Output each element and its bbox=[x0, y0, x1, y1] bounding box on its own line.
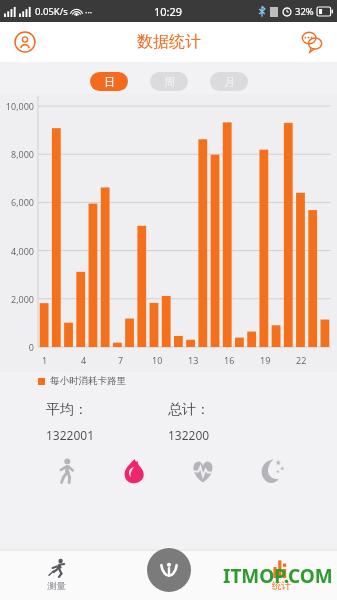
staticText: 统计 bbox=[272, 580, 291, 592]
staticText: 10,000 bbox=[5, 100, 34, 112]
staticText: 平均： bbox=[46, 401, 88, 419]
staticText: 7 bbox=[118, 354, 124, 366]
staticText: 1 bbox=[42, 354, 48, 366]
staticText: 10 bbox=[152, 354, 163, 366]
staticText: 测量 bbox=[47, 580, 66, 592]
button[interactable]: Calories bbox=[114, 451, 154, 491]
staticText: 日 bbox=[104, 75, 115, 89]
button[interactable]: 周 bbox=[150, 72, 188, 91]
staticText: 0.05K/s bbox=[35, 5, 68, 18]
staticText: 22 bbox=[296, 354, 307, 366]
staticText: 每小时消耗卡路里 bbox=[50, 375, 126, 387]
staticText: 10:29 bbox=[154, 4, 183, 19]
staticText: 4,000 bbox=[10, 245, 34, 257]
staticText: 132200 bbox=[168, 427, 210, 443]
staticText: 数据统计 bbox=[137, 32, 201, 52]
staticText: 19 bbox=[260, 354, 271, 366]
button[interactable]: 统计 bbox=[225, 550, 337, 600]
button[interactable]: Messages bbox=[295, 25, 329, 59]
button[interactable]: 日 bbox=[90, 72, 128, 91]
staticText: 0 bbox=[28, 341, 34, 353]
staticText: 8,000 bbox=[10, 148, 34, 160]
button[interactable]: Steps bbox=[46, 451, 86, 491]
staticText: 周 bbox=[164, 75, 175, 89]
staticText: 6,000 bbox=[10, 196, 34, 208]
staticText: 2,000 bbox=[10, 293, 34, 305]
staticText: 32% bbox=[295, 5, 314, 18]
button[interactable]: 月 bbox=[210, 72, 248, 91]
staticText: 总计： bbox=[168, 401, 210, 419]
button[interactable]: Profile bbox=[8, 25, 42, 59]
staticText: 月 bbox=[224, 75, 235, 89]
button[interactable]: Heart rate bbox=[183, 451, 223, 491]
staticText: 13 bbox=[188, 354, 199, 366]
staticText: ITMOP.COM bbox=[223, 563, 333, 589]
button[interactable]: 测量 bbox=[0, 550, 113, 600]
staticText: 16 bbox=[224, 354, 235, 366]
staticText: 1322001 bbox=[46, 427, 95, 443]
staticText: ··· bbox=[85, 6, 93, 18]
staticText: 4 bbox=[81, 354, 87, 366]
button[interactable]: Start bbox=[147, 548, 191, 592]
button[interactable]: Sleep bbox=[251, 451, 291, 491]
